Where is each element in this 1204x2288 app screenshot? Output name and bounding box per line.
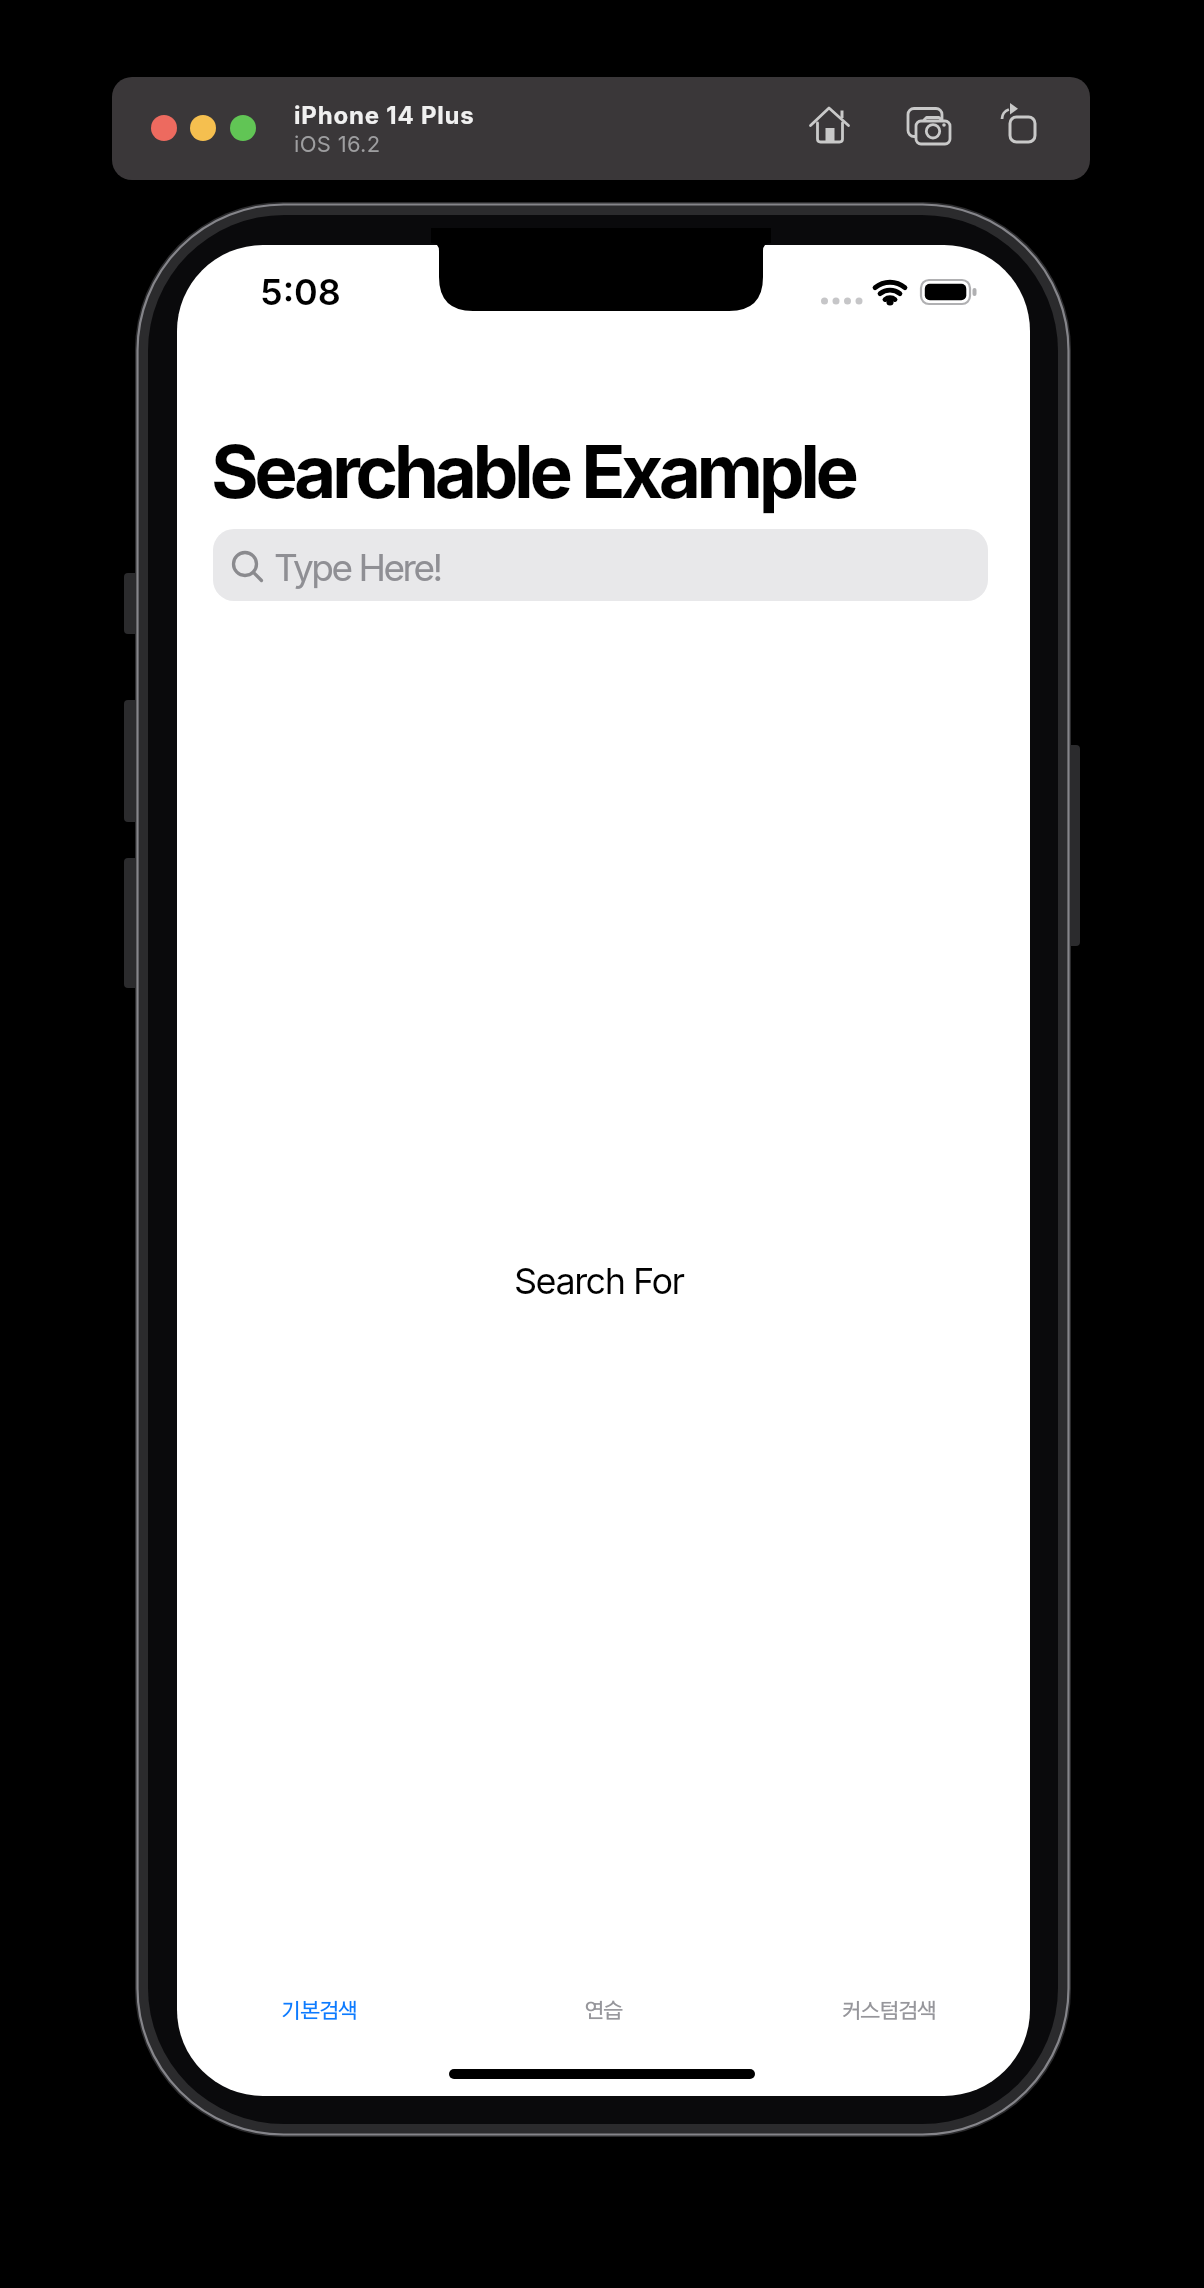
staticText: iOS 16.2 <box>294 131 381 158</box>
staticText: iPhone 14 Plus <box>294 101 475 130</box>
staticText: Searchable Example <box>211 427 855 515</box>
button[interactable]: Type Here! <box>213 529 988 601</box>
staticText: Type Here! <box>274 545 441 590</box>
button[interactable] <box>190 115 216 141</box>
button[interactable] <box>807 105 855 153</box>
staticText: 커스텀검색 <box>841 2001 936 2022</box>
button[interactable]: 연습 <box>461 1989 745 2033</box>
staticText: Search For <box>514 1259 684 1303</box>
button[interactable] <box>996 105 1044 153</box>
staticText: 기본검색 <box>281 2001 357 2022</box>
button[interactable] <box>907 105 955 153</box>
button[interactable]: 커스텀검색 <box>746 1989 1030 2033</box>
staticText: 5:08 <box>260 270 341 314</box>
button[interactable] <box>230 115 256 141</box>
button[interactable] <box>151 115 177 141</box>
staticText: 연습 <box>584 2001 622 2022</box>
button[interactable]: 기본검색 <box>177 1989 461 2033</box>
